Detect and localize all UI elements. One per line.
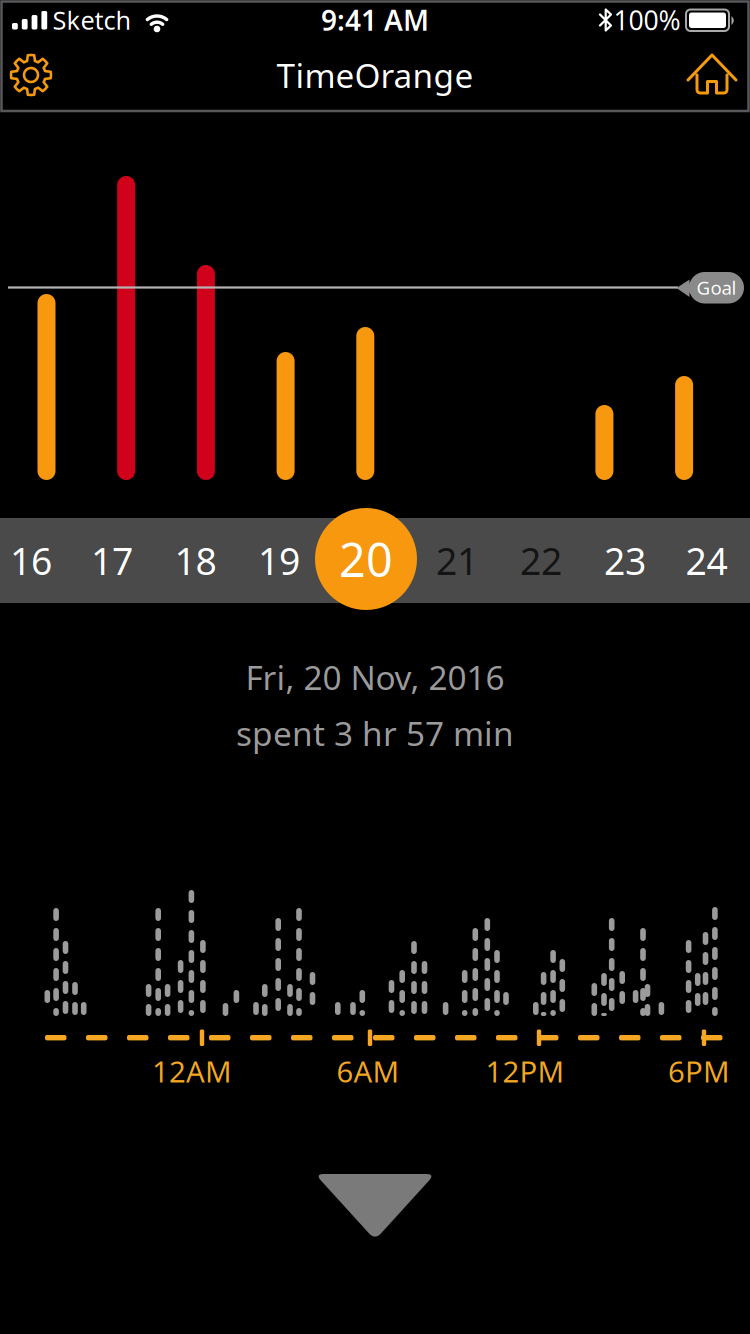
button[interactable]: Collapse (315, 1174, 435, 1240)
staticText: 12AM (152, 1051, 232, 1090)
staticText: 6PM (668, 1051, 730, 1090)
staticText: 21 (436, 536, 478, 585)
staticText: 23 (604, 536, 646, 585)
staticText: Sketch (52, 3, 131, 37)
staticText: 19 (258, 536, 300, 585)
button[interactable]: 22 (502, 518, 580, 603)
staticText: 16 (10, 536, 52, 585)
staticText: spent 3 hr 57 min (236, 711, 514, 755)
button[interactable]: 16 (0, 518, 70, 603)
button[interactable]: 17 (73, 518, 151, 603)
button[interactable]: 24 (667, 518, 745, 603)
button[interactable]: Settings (1, 45, 61, 105)
button[interactable]: 20 (315, 508, 417, 610)
staticText: 17 (91, 536, 133, 585)
button[interactable]: 18 (156, 518, 234, 603)
button[interactable]: Home (680, 47, 744, 103)
button[interactable]: 19 (240, 518, 318, 603)
staticText: 12PM (485, 1051, 564, 1090)
staticText: Fri, 20 Nov, 2016 (245, 655, 504, 699)
staticText: 20 (339, 528, 393, 590)
staticText: 100% (613, 2, 680, 38)
staticText: Goal (696, 275, 736, 300)
staticText: 22 (520, 536, 562, 585)
staticText: 24 (685, 536, 727, 585)
staticText: TimeOrange (276, 53, 473, 97)
button[interactable]: 23 (586, 518, 664, 603)
button[interactable]: 21 (418, 518, 496, 603)
staticText: 18 (174, 536, 216, 585)
staticText: 6AM (336, 1051, 399, 1090)
staticText: 9:41 AM (321, 1, 429, 39)
